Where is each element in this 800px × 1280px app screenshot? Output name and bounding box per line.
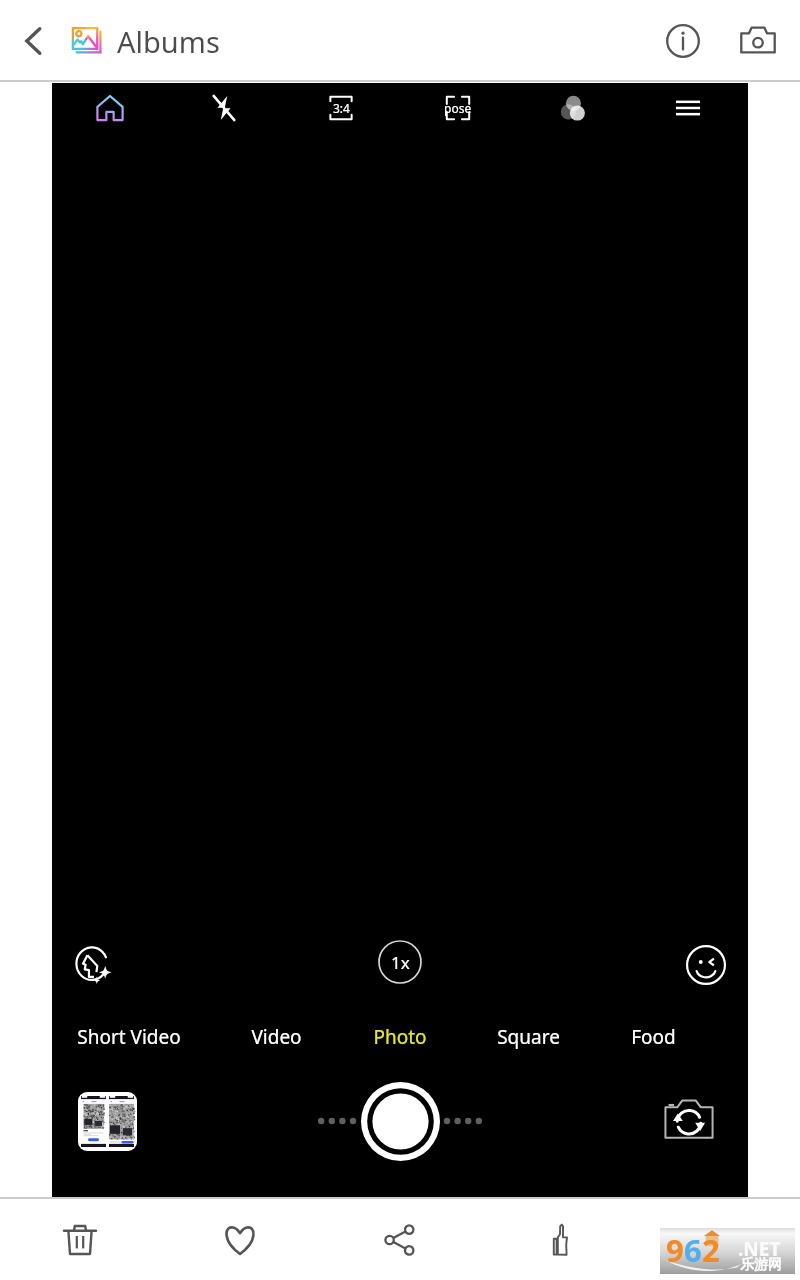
staticText: Square bbox=[497, 1024, 560, 1050]
button[interactable]: Short Video bbox=[49, 1015, 209, 1059]
staticText: 3:4 bbox=[333, 100, 350, 116]
staticText: 1x bbox=[391, 951, 410, 974]
button[interactable]: Info bbox=[648, 6, 718, 76]
button[interactable]: Square bbox=[448, 1015, 608, 1059]
staticText: Food bbox=[631, 1024, 676, 1050]
button[interactable]: Gallery bbox=[78, 1092, 137, 1151]
button[interactable]: Menu bbox=[664, 84, 712, 132]
staticText: pose bbox=[444, 100, 472, 116]
button[interactable]: Camera bbox=[723, 6, 793, 76]
button[interactable]: Aspect ratio 3 to 4 bbox=[317, 84, 365, 132]
button[interactable]: Filters bbox=[550, 84, 598, 132]
staticText: Video bbox=[251, 1024, 302, 1050]
button[interactable]: Stickers bbox=[678, 937, 734, 993]
staticText: Photo bbox=[373, 1024, 427, 1050]
button[interactable]: Shutter bbox=[358, 1079, 442, 1163]
staticText: 9 bbox=[666, 1229, 684, 1271]
button[interactable]: Pose bbox=[434, 84, 482, 132]
button[interactable]: Photo bbox=[320, 1015, 480, 1059]
staticText: 乐游网 bbox=[740, 1256, 782, 1274]
button[interactable]: Favorite bbox=[205, 1199, 275, 1280]
button[interactable]: Home bbox=[86, 84, 134, 132]
button[interactable]: Back bbox=[6, 13, 62, 69]
button[interactable]: Like bbox=[525, 1199, 595, 1280]
staticText: 6 bbox=[684, 1229, 702, 1271]
button[interactable]: Zoom 1x bbox=[374, 936, 426, 988]
staticText: 2 bbox=[702, 1229, 720, 1271]
button[interactable]: Albums bbox=[70, 13, 220, 69]
button[interactable]: Food bbox=[573, 1015, 733, 1059]
button[interactable]: Flash off bbox=[200, 84, 248, 132]
staticText: .NET bbox=[738, 1236, 781, 1262]
button[interactable]: Beauty bbox=[66, 937, 122, 993]
button[interactable]: Switch camera bbox=[655, 1087, 723, 1155]
button[interactable]: Video bbox=[196, 1015, 356, 1059]
staticText: Short Video bbox=[77, 1024, 181, 1050]
button[interactable]: Share bbox=[365, 1199, 435, 1280]
staticText: Albums bbox=[117, 22, 220, 61]
button[interactable]: Delete bbox=[45, 1199, 115, 1280]
